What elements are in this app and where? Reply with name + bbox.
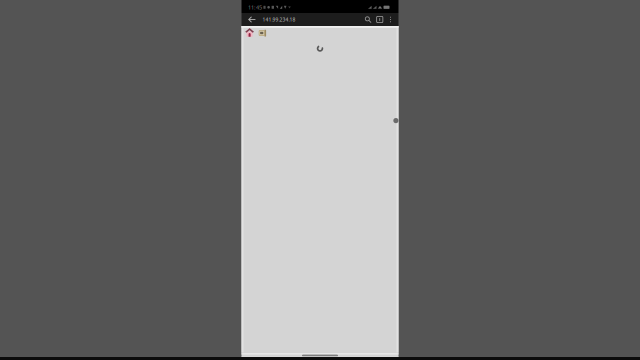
button[interactable]: Search [362, 12, 374, 26]
staticText: 141.99.234.18 [262, 16, 295, 23]
staticText: 11:45 [248, 3, 262, 11]
button[interactable]: More options [385, 12, 395, 26]
button[interactable]: Tabs [374, 12, 385, 26]
button[interactable]: Back [244, 12, 259, 26]
button[interactable]: 141.99.234.18 [259, 12, 295, 26]
